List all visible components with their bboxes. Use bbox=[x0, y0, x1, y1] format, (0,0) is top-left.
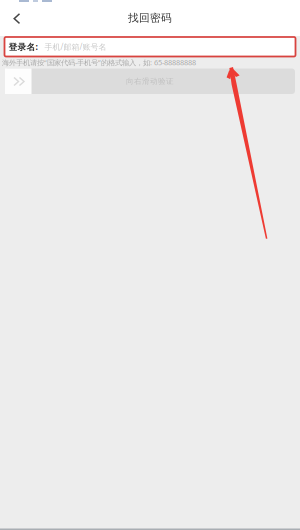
staticText: 找回密码 bbox=[128, 11, 172, 25]
staticText: 登录名: bbox=[8, 41, 37, 53]
staticText: 手机/邮箱/账号名 bbox=[44, 41, 106, 52]
button[interactable]: 返回 bbox=[0, 0, 30, 36]
staticText: 海外手机请按“国家代码-手机号”的格式输入，如: 65-88888888 bbox=[2, 57, 196, 67]
staticText: 向右滑动验证 bbox=[126, 76, 174, 86]
button[interactable]: 向右滑动验证 bbox=[0, 68, 300, 94]
button[interactable]: 登录名: bbox=[0, 36, 300, 56]
